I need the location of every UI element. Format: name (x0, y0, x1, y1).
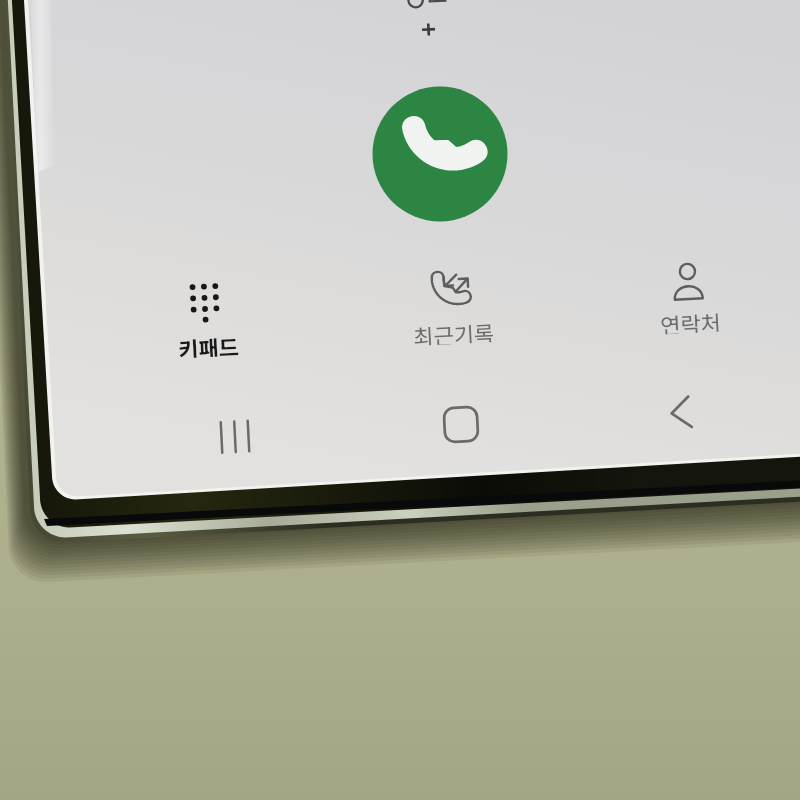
button[interactable]: 키패드 (172, 329, 244, 359)
staticText: 최근기록 (412, 316, 495, 346)
button[interactable]: 최근기록 (406, 316, 500, 346)
staticText: 키패드 (177, 329, 240, 358)
staticText: 연락처 (659, 305, 722, 334)
button[interactable]: 연락처 (654, 305, 726, 335)
